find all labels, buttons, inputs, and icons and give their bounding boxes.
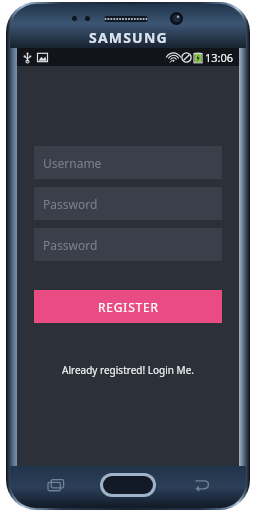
staticText: 13:06	[205, 50, 234, 65]
staticText: Username	[43, 155, 102, 171]
button[interactable]: Password	[34, 187, 222, 220]
staticText: Password	[43, 237, 98, 253]
staticText: REGISTER	[98, 299, 159, 315]
button[interactable]: Back	[191, 477, 211, 493]
staticText: Already registred! Login Me.	[62, 363, 194, 377]
button[interactable]: Already registred! Login Me.	[29, 363, 227, 377]
button[interactable]: Recent apps	[46, 477, 66, 493]
button[interactable]: Password	[34, 228, 222, 261]
staticText: SAMSUNG	[89, 28, 168, 47]
button[interactable]: REGISTER	[34, 290, 222, 323]
button[interactable]: Home	[100, 473, 156, 497]
staticText: Password	[43, 196, 98, 212]
button[interactable]: Username	[34, 146, 222, 179]
